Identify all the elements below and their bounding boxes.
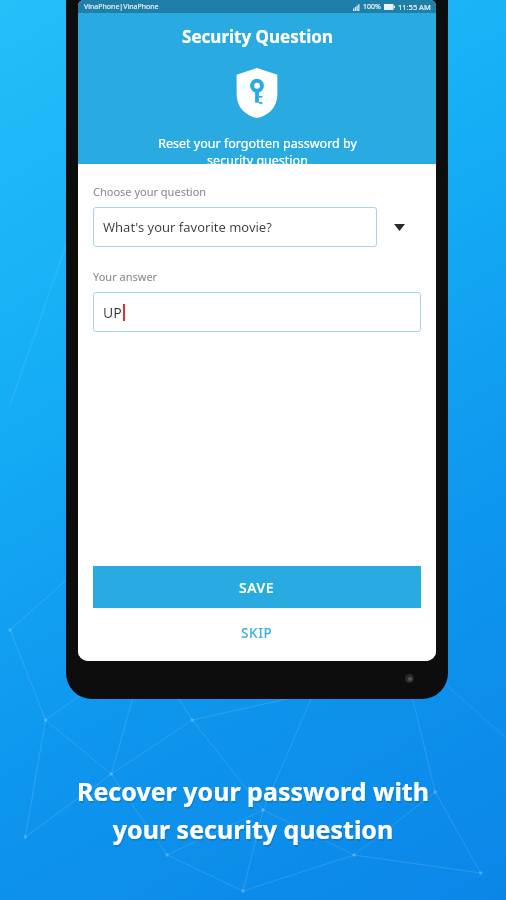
staticText: Security Question xyxy=(182,25,333,48)
staticText: 100% xyxy=(363,2,381,12)
staticText: SAVE xyxy=(239,578,275,597)
staticText: 11:55 AM xyxy=(398,2,431,12)
button[interactable]: SAVE xyxy=(93,566,421,608)
staticText: VinaPhone|VinaPhone xyxy=(84,2,159,12)
staticText: Choose your question xyxy=(93,184,207,199)
staticText: Recover your password with your security… xyxy=(1,776,506,848)
staticText: Recover your password with your security… xyxy=(0,774,506,846)
button[interactable]: UP xyxy=(93,292,421,332)
staticText: What's your favorite movie? xyxy=(103,218,272,236)
staticText: SKIP xyxy=(241,624,273,642)
staticText: Your answer xyxy=(93,269,158,284)
button[interactable]: Open question list xyxy=(377,207,421,247)
staticText: UP xyxy=(103,303,122,322)
button[interactable]: What's your favorite movie? xyxy=(93,207,377,247)
button[interactable]: SKIP xyxy=(93,613,421,653)
staticText: Reset your forgotten password by securit… xyxy=(158,135,357,164)
